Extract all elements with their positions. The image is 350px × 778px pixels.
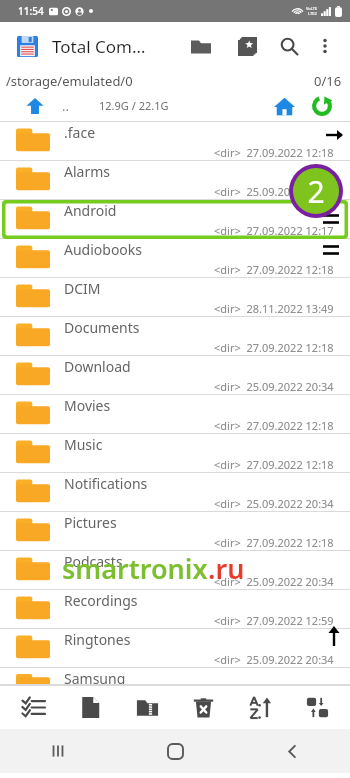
button[interactable]: Alarms: [0, 161, 350, 200]
staticText: Download: [64, 357, 131, 376]
button[interactable]: Notifications: [0, 473, 350, 512]
staticText: .face: [64, 123, 96, 142]
staticText: 2: [307, 171, 325, 212]
button[interactable]: Folder: [184, 29, 218, 63]
button[interactable]: Recordings: [0, 590, 350, 629]
button[interactable]: Samsung: [0, 668, 350, 685]
staticText: smartronix: [62, 550, 208, 587]
staticText: <dir> 27.09.2022 12:18: [214, 457, 334, 472]
staticText: <dir> 27.09.2022 12:18: [214, 262, 334, 277]
staticText: .ru: [208, 550, 245, 587]
button[interactable]: Audiobooks: [0, 239, 350, 278]
button[interactable]: Move: [294, 686, 340, 728]
staticText: <dir> 25.09.2022 20:34: [214, 184, 334, 199]
button[interactable]: Android: [0, 200, 350, 239]
button[interactable]: Back: [265, 729, 319, 773]
staticText: Recordings: [64, 591, 138, 610]
button[interactable]: Home: [148, 729, 202, 773]
button[interactable]: Sort: [237, 686, 283, 728]
button[interactable]: New file: [67, 686, 113, 728]
button[interactable]: Podcasts: [0, 551, 350, 590]
staticText: <dir> 27.09.2022 12:17: [214, 223, 334, 238]
button[interactable]: Zip: [124, 686, 170, 728]
button[interactable]: [14, 33, 40, 59]
staticText: DCIM: [64, 279, 101, 298]
staticText: Alarms: [64, 162, 110, 181]
staticText: Pictures: [64, 513, 117, 532]
staticText: ..: [62, 97, 69, 115]
staticText: LTE2: [308, 11, 317, 16]
button[interactable]: Delete: [180, 686, 226, 728]
staticText: Ringtones: [64, 630, 131, 649]
button[interactable]: DCIM: [0, 278, 350, 317]
button[interactable]: Documents: [0, 317, 350, 356]
staticText: 11:54: [18, 4, 44, 18]
staticText: <dir> 27.09.2022 12:59: [214, 613, 334, 628]
button[interactable]: .face: [0, 122, 350, 161]
button[interactable]: Up: [22, 93, 48, 119]
staticText: <dir> 27.09.2022 12:18: [214, 418, 334, 433]
button[interactable]: More options: [310, 31, 340, 61]
staticText: Android: [64, 201, 117, 220]
button[interactable]: Pictures: [0, 512, 350, 551]
staticText: <dir> 25.09.2022 20:34: [214, 652, 334, 667]
staticText: <dir> 27.09.2022 12:18: [214, 535, 334, 550]
button[interactable]: Recents: [31, 729, 85, 773]
staticText: <dir> 27.09.2022 12:18: [214, 340, 334, 355]
button[interactable]: Home: [270, 92, 298, 120]
staticText: Movies: [64, 396, 111, 415]
staticText: <dir> 28.11.2022 13:49: [214, 301, 334, 316]
staticText: VoLTE: [306, 6, 318, 11]
staticText: <dir> 27.09.2022 12:18: [214, 145, 334, 160]
staticText: <dir> 25.09.2022 20:34: [214, 379, 334, 394]
staticText: Notifications: [64, 474, 148, 493]
button[interactable]: Search: [272, 29, 306, 63]
staticText: 12.9G / 22.1G: [99, 98, 169, 113]
staticText: Music: [64, 435, 103, 454]
button[interactable]: Music: [0, 434, 350, 473]
button[interactable]: Select: [10, 686, 56, 728]
staticText: Podcasts: [64, 552, 123, 571]
staticText: Audiobooks: [64, 240, 143, 259]
staticText: 0/16: [314, 72, 342, 90]
staticText: Samsung: [64, 669, 126, 685]
button[interactable]: Bookmarks: [230, 29, 264, 63]
staticText: Documents: [64, 318, 140, 337]
button[interactable]: Ringtones: [0, 629, 350, 668]
button[interactable]: Download: [0, 356, 350, 395]
staticText: /storage/emulated/0: [6, 72, 133, 90]
staticText: <dir> 25.09.2022 20:34: [214, 574, 334, 589]
button[interactable]: Movies: [0, 395, 350, 434]
staticText: Total Com…: [52, 35, 146, 58]
staticText: <dir> 25.09.2022 20:34: [214, 496, 334, 511]
button[interactable]: Refresh: [308, 92, 336, 120]
